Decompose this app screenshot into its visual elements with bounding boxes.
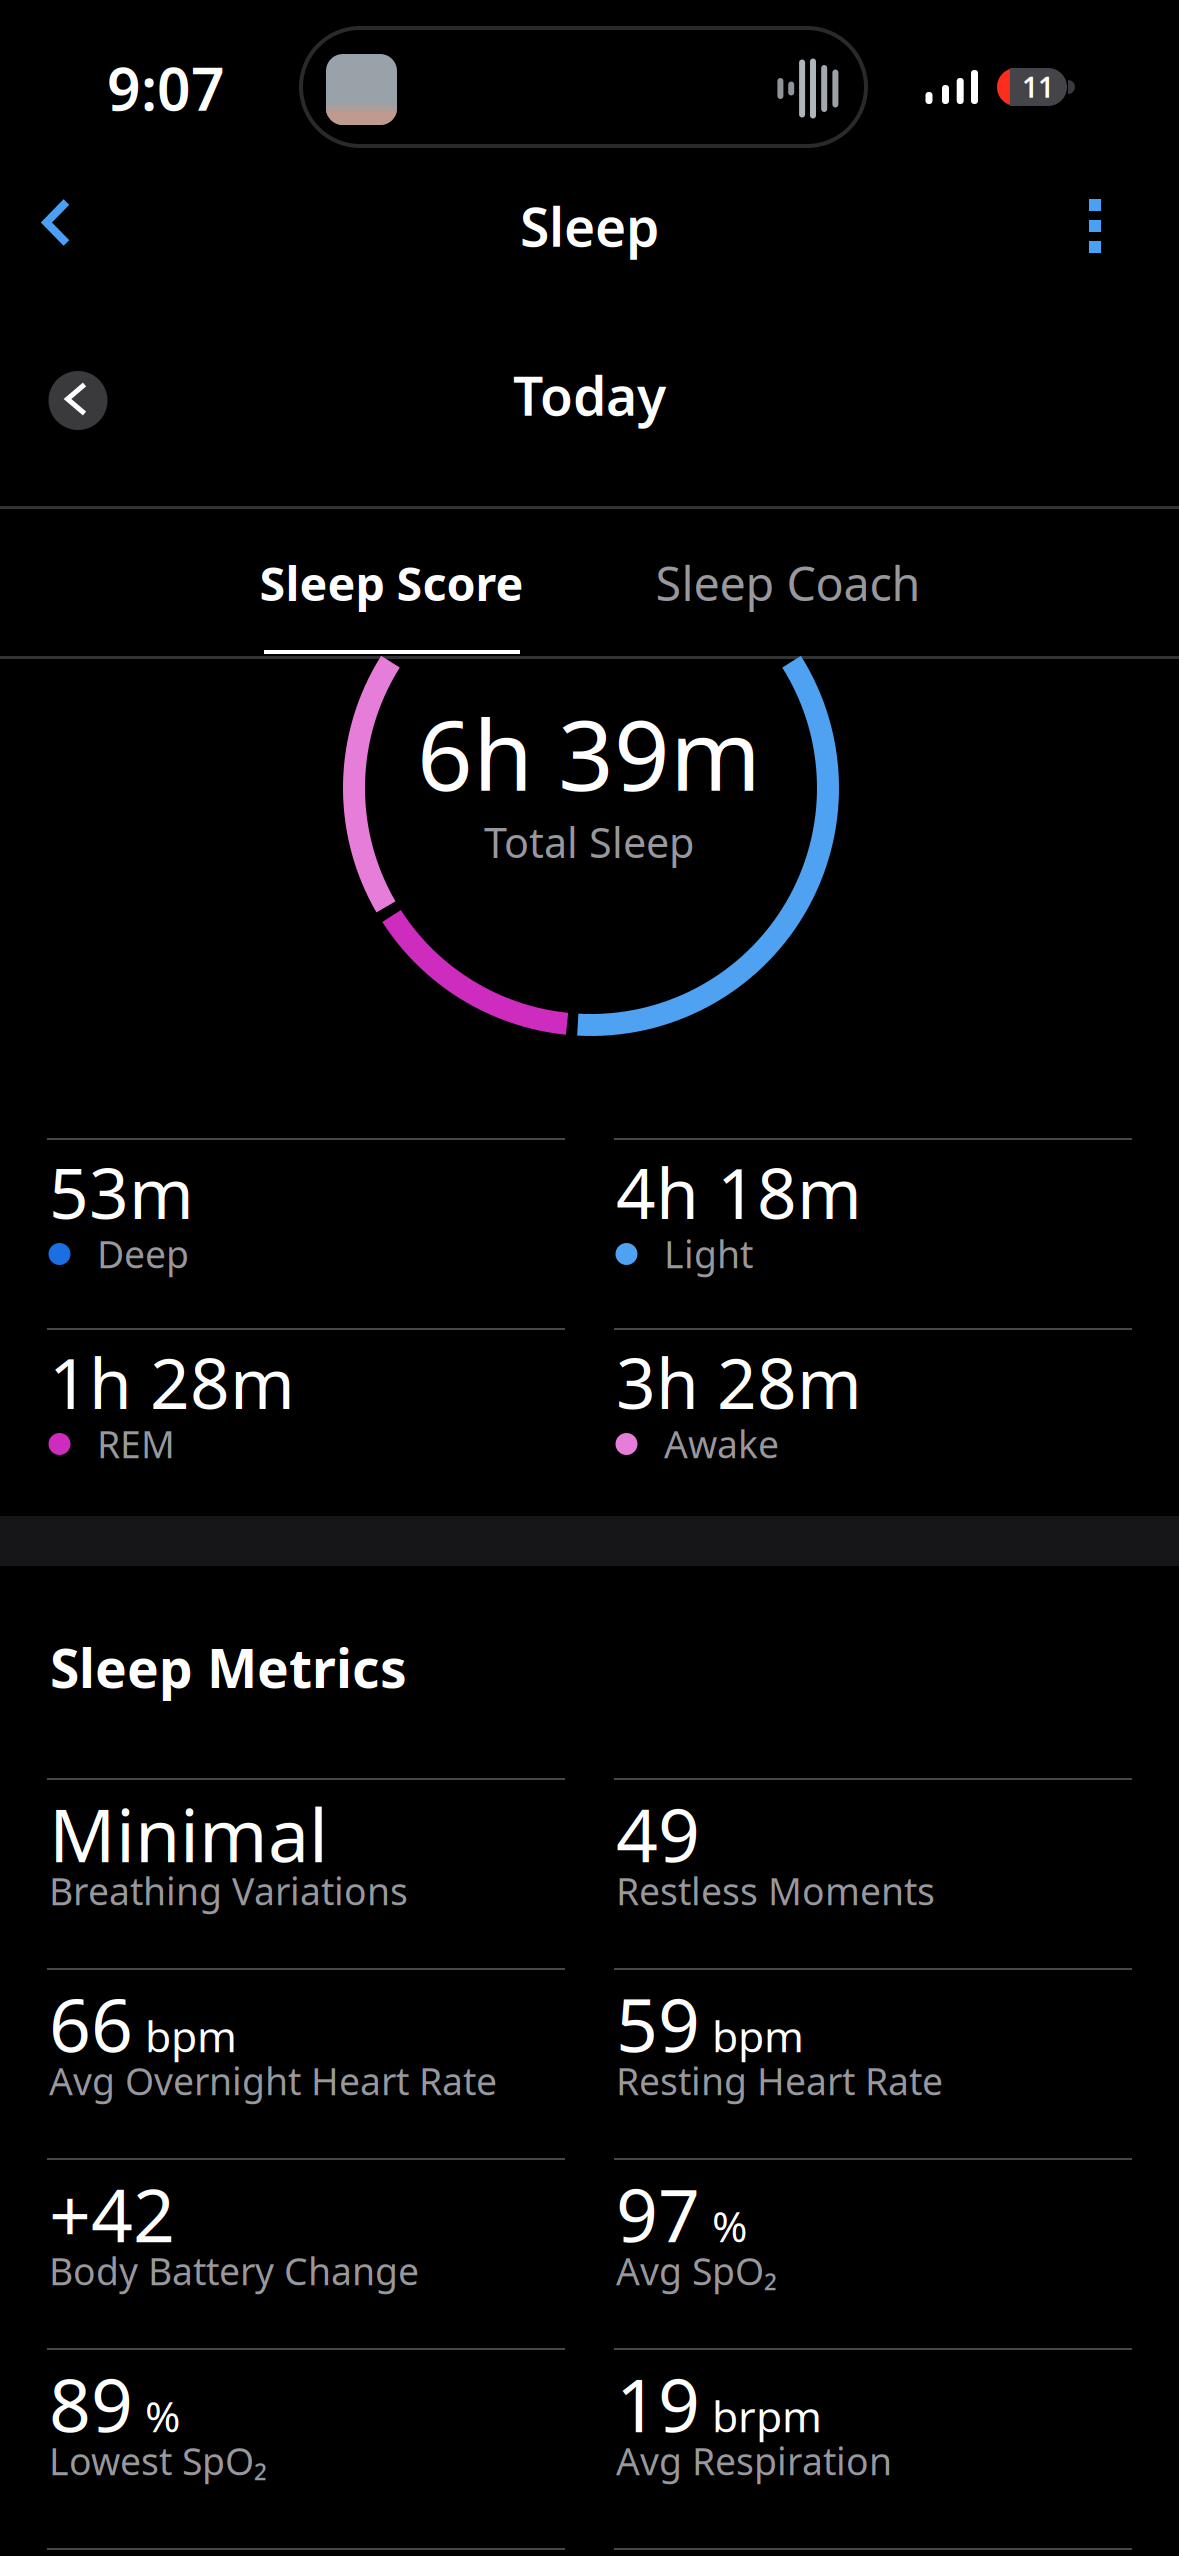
staticText: 4h 18m <box>616 1146 862 1238</box>
staticText: Lowest SpO₂ <box>49 2436 267 2486</box>
staticText: Avg Overnight Heart Rate <box>49 2056 497 2106</box>
button[interactable]: More options <box>1065 182 1125 270</box>
staticText: % <box>145 2387 180 2444</box>
staticText: Avg SpO₂ <box>616 2246 777 2296</box>
staticText: 53m <box>49 1146 194 1238</box>
button[interactable]: Sleep Score <box>221 523 561 643</box>
staticText: brpm <box>712 2387 822 2444</box>
staticText: bpm <box>145 2007 237 2064</box>
staticText: Today <box>513 360 666 430</box>
staticText: 3h 28m <box>616 1336 862 1428</box>
staticText: Resting Heart Rate <box>616 2056 943 2106</box>
staticText: 49 <box>616 1785 700 1882</box>
staticText: 59 <box>616 1975 700 2072</box>
staticText: bpm <box>712 2007 804 2064</box>
button[interactable]: Previous day <box>48 371 107 430</box>
staticText: 1h 28m <box>49 1336 295 1428</box>
staticText: Sleep <box>520 191 659 261</box>
staticText: 97 <box>616 2165 700 2262</box>
staticText: Body Battery Change <box>49 2246 419 2296</box>
staticText: Restless Moments <box>616 1866 935 1916</box>
staticText: Avg Respiration <box>616 2436 892 2486</box>
staticText: Breathing Variations <box>49 1866 408 1916</box>
staticText: Total Sleep <box>484 815 694 869</box>
staticText: Deep <box>97 1229 189 1279</box>
staticText: 89 <box>49 2355 133 2452</box>
staticText: 6h 39m <box>417 688 761 818</box>
staticText: 9:07 <box>107 49 225 127</box>
staticText: Sleep Coach <box>655 552 920 614</box>
staticText: Sleep Metrics <box>50 1632 407 1703</box>
button[interactable]: Back <box>28 178 108 266</box>
staticText: Light <box>664 1229 753 1279</box>
staticText: +42 <box>49 2165 175 2262</box>
staticText: Awake <box>664 1419 779 1469</box>
staticText: 66 <box>49 1975 133 2072</box>
staticText: 19 <box>616 2355 700 2452</box>
staticText: 11 <box>1022 68 1054 106</box>
button[interactable]: Sleep Coach <box>618 523 958 643</box>
staticText: Sleep Score <box>259 552 523 614</box>
staticText: REM <box>97 1419 175 1469</box>
staticText: % <box>712 2197 747 2254</box>
staticText: Minimal <box>49 1785 328 1882</box>
